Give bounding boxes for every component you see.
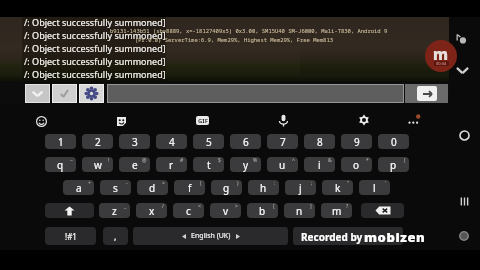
staticText: =	[162, 180, 165, 187]
staticText: 0	[391, 135, 397, 149]
button[interactable]: k	[322, 180, 353, 195]
button[interactable]: 2	[82, 134, 113, 149]
button[interactable]: 0	[378, 134, 409, 149]
staticText: m	[332, 204, 342, 218]
button[interactable]: q	[45, 157, 76, 172]
button[interactable]: Emoji	[33, 113, 49, 129]
staticText: "	[347, 180, 350, 187]
button[interactable]: Mobizen recorder	[425, 40, 457, 72]
button[interactable]: m	[321, 203, 352, 218]
button[interactable]: 6	[230, 134, 261, 149]
staticText: /: Object successfully summoned]	[24, 16, 166, 28]
button[interactable]: Send	[405, 84, 448, 103]
staticText: $	[218, 157, 221, 164]
staticText: _	[124, 203, 127, 210]
button[interactable]: Voice input	[275, 112, 291, 128]
staticText: *	[366, 157, 369, 164]
button[interactable]: 7	[267, 134, 298, 149]
button[interactable]: n	[284, 203, 315, 218]
button[interactable]: i	[304, 157, 335, 172]
staticText: #	[180, 157, 184, 164]
button[interactable]: e	[119, 157, 150, 172]
button[interactable]: f	[174, 180, 205, 195]
button[interactable]: Stickers	[113, 113, 129, 129]
button[interactable]: s	[100, 180, 131, 195]
staticText: ,	[114, 230, 117, 242]
staticText: /: Object successfully summoned]	[24, 42, 166, 54]
button[interactable]: GIF	[195, 114, 210, 127]
button[interactable]: 3	[119, 134, 150, 149]
button[interactable]: o	[341, 157, 372, 172]
staticText: h	[260, 181, 267, 195]
staticText: d	[149, 181, 156, 195]
button[interactable]: Capture	[452, 30, 470, 48]
button[interactable]: 8	[304, 134, 335, 149]
staticText: y	[243, 158, 249, 172]
staticText: +	[88, 180, 91, 187]
button[interactable]: r	[156, 157, 187, 172]
button[interactable]: English (UK)	[133, 227, 288, 245]
button[interactable]: More options	[406, 113, 422, 129]
button[interactable]: 4	[156, 134, 187, 149]
staticText: a	[76, 181, 82, 195]
button[interactable]: Hide keyboard	[25, 84, 50, 103]
button[interactable]	[107, 84, 404, 103]
button[interactable]: !#1	[45, 227, 96, 245]
button[interactable]: z	[99, 203, 130, 218]
button[interactable]: d	[137, 180, 168, 195]
staticText: ~	[70, 157, 73, 164]
button[interactable]: Keyboard settings	[356, 112, 372, 128]
button[interactable]: 9	[341, 134, 372, 149]
button[interactable]: Home	[454, 125, 474, 145]
button[interactable]	[361, 203, 404, 218]
staticText: r	[169, 158, 174, 172]
button[interactable]: Recent apps	[454, 191, 474, 211]
button[interactable]: Back	[454, 226, 474, 246]
button[interactable]	[45, 203, 94, 218]
staticText: w	[94, 158, 102, 172]
staticText: 9	[354, 135, 360, 149]
staticText: @	[142, 157, 147, 164]
button[interactable]: v	[210, 203, 241, 218]
button[interactable]: Game settings	[79, 84, 104, 103]
button[interactable]: Confirm	[52, 84, 77, 103]
button[interactable]: j	[285, 180, 316, 195]
staticText: q	[57, 158, 64, 172]
button[interactable]: w	[82, 157, 113, 172]
staticText: p	[390, 158, 397, 172]
button[interactable]: u	[267, 157, 298, 172]
staticText: 1	[58, 135, 64, 149]
staticText: ;	[311, 180, 313, 187]
button[interactable]: ,	[103, 227, 128, 245]
button[interactable]: g	[211, 180, 242, 195]
button[interactable]: b	[247, 203, 278, 218]
staticText: c	[186, 204, 191, 218]
staticText: z	[112, 204, 117, 218]
button[interactable]: t	[193, 157, 224, 172]
button[interactable]: p	[378, 157, 409, 172]
staticText: i	[318, 158, 321, 172]
button[interactable]: 1	[45, 134, 76, 149]
button[interactable]: 5	[193, 134, 224, 149]
button[interactable]: Enter	[293, 227, 403, 245]
staticText: n	[296, 204, 303, 218]
staticText: u	[279, 158, 286, 172]
staticText: g	[223, 181, 230, 195]
staticText: %	[253, 157, 258, 164]
staticText: /: Object successfully summoned]	[24, 68, 166, 80]
staticText: 6	[243, 135, 249, 149]
staticText: f	[188, 181, 192, 195]
button[interactable]: Collapse recorder	[452, 60, 472, 80]
staticText: [	[273, 203, 275, 210]
button[interactable]: h	[248, 180, 279, 195]
staticText: m	[433, 44, 449, 64]
button[interactable]: l	[359, 180, 390, 195]
staticText: -	[126, 180, 128, 187]
staticText: t	[207, 158, 211, 172]
button[interactable]: x	[136, 203, 167, 218]
button[interactable]: a	[63, 180, 94, 195]
staticText: 7	[280, 135, 286, 149]
button[interactable]: c	[173, 203, 204, 218]
button[interactable]: y	[230, 157, 261, 172]
staticText: x	[149, 204, 155, 218]
